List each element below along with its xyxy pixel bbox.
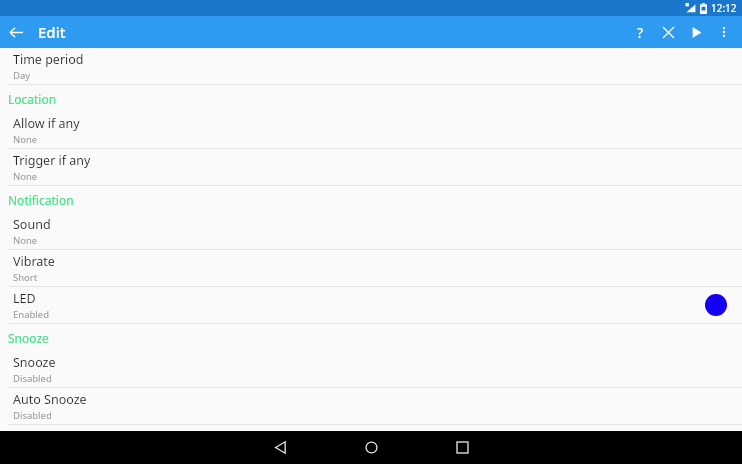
button[interactable]: LED colour [705,294,727,316]
staticText: Edit [38,22,66,42]
button[interactable]: Back [260,431,300,464]
staticText: LED [13,290,36,307]
button[interactable]: Auto Snooze [0,388,742,424]
button[interactable]: LED [0,287,742,323]
button[interactable]: Run [682,18,710,46]
staticText: Enabled [13,308,49,321]
staticText: Snooze [8,330,49,346]
staticText: Disabled [13,409,52,422]
staticText: Disabled [13,372,52,385]
staticText: Sound [13,216,51,233]
staticText: None [13,234,38,247]
button[interactable]: Snooze [0,351,742,387]
staticText: 12:12 [711,1,737,15]
staticText: Short [13,271,38,284]
button[interactable]: Close [654,18,682,46]
staticText: None [13,170,38,183]
staticText: Location [8,91,57,107]
button[interactable]: Vibrate [0,250,742,286]
button[interactable]: Time period [0,48,742,84]
button[interactable]: Back [0,16,32,48]
staticText: Snooze [13,354,56,371]
button[interactable]: Trigger if any [0,149,742,185]
button[interactable]: Sound [0,213,742,249]
button[interactable]: More options [710,18,738,46]
button[interactable]: Recent apps [442,431,482,464]
button[interactable]: Home [351,431,391,464]
button[interactable]: Help [626,18,654,46]
staticText: Time period [13,51,84,68]
staticText: Notification [8,192,74,208]
staticText: ? [637,23,644,42]
staticText: Allow if any [13,115,80,132]
button[interactable]: Allow if any [0,112,742,148]
staticText: Auto Snooze [13,391,87,408]
staticText: Trigger if any [13,152,91,169]
staticText: None [13,133,38,146]
staticText: Vibrate [13,253,55,270]
staticText: Day [13,69,31,82]
